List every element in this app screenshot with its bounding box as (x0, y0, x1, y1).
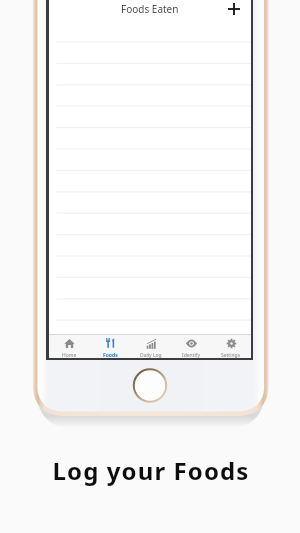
staticText: Foods (103, 352, 118, 359)
staticText: Daily Log (140, 352, 162, 359)
staticText: Home (62, 352, 77, 359)
button[interactable]: Foods (90, 334, 131, 358)
staticText: Settings (221, 352, 241, 359)
staticText: Identify (182, 352, 201, 359)
button[interactable]: Identify (171, 334, 211, 358)
button[interactable]: Settings (211, 334, 251, 358)
button[interactable]: Home (49, 334, 90, 358)
button[interactable]: Add food (226, 1, 242, 17)
staticText: Log your Foods (1, 454, 300, 487)
button[interactable]: Daily Log (131, 334, 171, 358)
staticText: Foods Eaten (121, 2, 179, 16)
